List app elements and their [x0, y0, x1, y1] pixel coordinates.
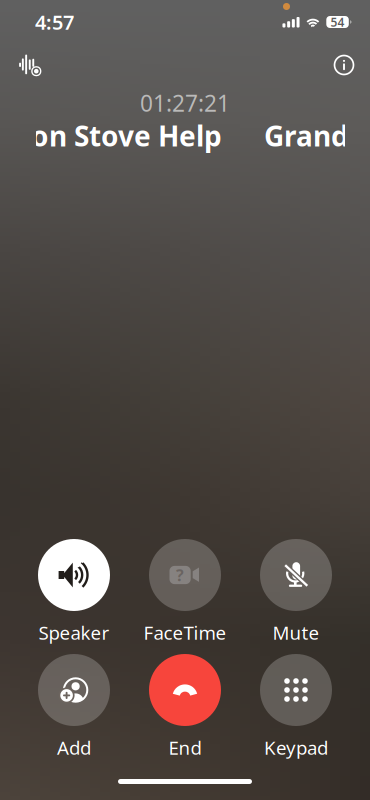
- button[interactable]: Speaker: [38, 539, 110, 645]
- button[interactable]: Call details: [330, 51, 358, 79]
- button[interactable]: Keypad: [260, 654, 332, 760]
- staticText: Add: [57, 735, 91, 760]
- staticText: Speaker: [38, 620, 109, 645]
- staticText: ?: [176, 564, 184, 586]
- staticText: 4:57: [35, 9, 74, 35]
- button[interactable]: Call recording: [16, 53, 44, 81]
- staticText: Mute: [272, 620, 319, 645]
- staticText: 01:27:21: [140, 88, 230, 118]
- staticText: FaceTime: [143, 620, 226, 645]
- staticText: 54: [331, 14, 345, 30]
- staticText: End: [168, 735, 201, 760]
- button[interactable]: Add: [38, 654, 110, 760]
- button[interactable]: End: [149, 654, 221, 760]
- button[interactable]: ?: [149, 539, 221, 645]
- staticText: Grand: [264, 117, 349, 154]
- staticText: Keypad: [264, 735, 328, 760]
- staticText: on Stove Help: [31, 117, 222, 154]
- button[interactable]: Mute: [260, 539, 332, 645]
